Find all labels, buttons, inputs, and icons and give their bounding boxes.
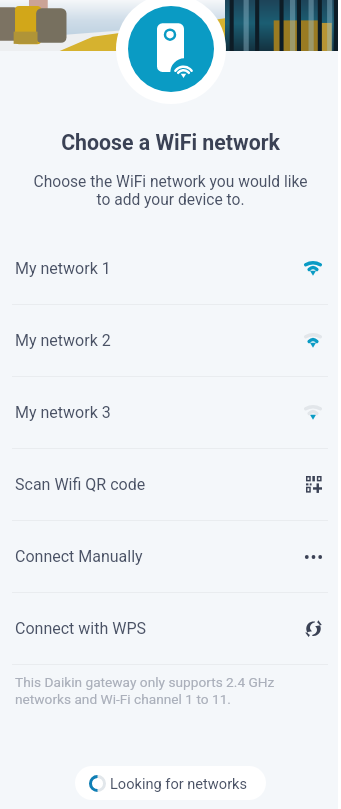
button[interactable]: My network 1 [0, 233, 341, 304]
staticText: Choose a WiFi network [0, 130, 341, 155]
staticText: My network 3 [15, 403, 111, 422]
staticText: Choose the WiFi network you would like t… [0, 173, 341, 209]
staticText: Looking for networks [110, 775, 248, 792]
button[interactable]: Looking for networks [75, 766, 266, 800]
button[interactable]: My network 3 [0, 377, 341, 448]
staticText: My network 1 [15, 259, 111, 278]
button[interactable]: Connect with WPS [0, 593, 341, 664]
staticText: My network 2 [15, 331, 111, 350]
staticText: Scan Wifi QR code [15, 475, 146, 494]
button[interactable]: My network 2 [0, 305, 341, 376]
button[interactable]: Scan Wifi QR code [0, 449, 341, 520]
staticText: Connect with WPS [15, 619, 146, 638]
staticText: Connect Manually [15, 547, 143, 566]
button[interactable]: Connect Manually [0, 521, 341, 592]
staticText: This Daikin gateway only supports 2.4 GH… [15, 674, 275, 708]
